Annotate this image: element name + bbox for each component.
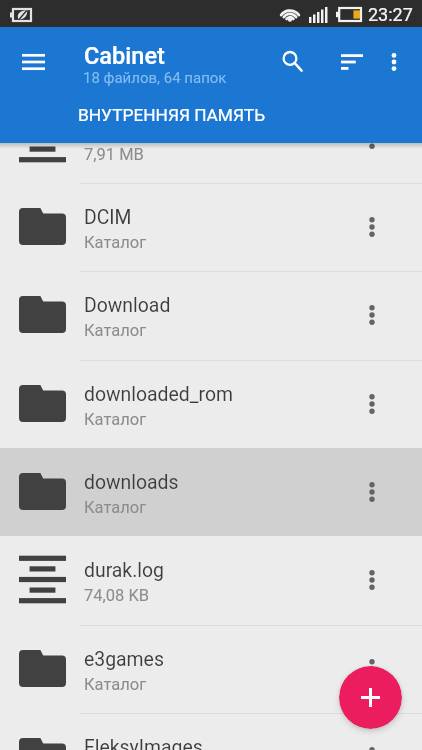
- button[interactable]: More options: [370, 38, 418, 86]
- button[interactable]: e3games: [0, 625, 422, 713]
- staticText: durak.log: [84, 559, 334, 582]
- staticText: Каталог: [84, 321, 147, 340]
- staticText: Cabinet: [84, 42, 165, 70]
- button[interactable]: Item options: [348, 713, 396, 750]
- button[interactable]: Item options: [348, 95, 396, 183]
- button[interactable]: Navigation menu: [9, 38, 57, 86]
- button[interactable]: Item options: [348, 448, 396, 536]
- staticText: Каталог: [84, 233, 147, 252]
- staticText: FleksyImages: [84, 736, 334, 750]
- staticText: 74,08 KB: [84, 586, 150, 605]
- button[interactable]: Item options: [348, 183, 396, 271]
- staticText: Каталог: [84, 675, 147, 694]
- staticText: 7,91 MB: [84, 145, 144, 164]
- button[interactable]: downloaded_rom: [0, 360, 422, 448]
- staticText: 23:27: [368, 4, 413, 25]
- button[interactable]: FleksyImages: [0, 713, 422, 750]
- staticText: e3games: [84, 648, 334, 671]
- button[interactable]: DCIM: [0, 183, 422, 271]
- button[interactable]: Add: [339, 666, 402, 729]
- staticText: Каталог: [84, 498, 147, 517]
- button[interactable]: Item options: [348, 625, 396, 713]
- staticText: Каталог: [84, 410, 147, 429]
- button[interactable]: Item options: [348, 360, 396, 448]
- button[interactable]: durak.log: [0, 536, 422, 624]
- staticText: Download: [84, 294, 334, 317]
- button[interactable]: ВНУТРЕННЯЯ ПАМЯТЬ: [78, 105, 266, 125]
- staticText: downloads: [84, 471, 334, 494]
- staticText: rom.zip: [84, 118, 334, 141]
- button[interactable]: Search: [268, 37, 316, 85]
- staticText: downloaded_rom: [84, 383, 334, 406]
- staticText: DCIM: [84, 206, 334, 229]
- button[interactable]: Item options: [348, 271, 396, 359]
- staticText: 18 файлов, 64 папок: [83, 69, 227, 87]
- button[interactable]: downloads: [0, 448, 422, 536]
- button[interactable]: Download: [0, 271, 422, 359]
- button[interactable]: rom.zip: [0, 95, 422, 183]
- button[interactable]: Item options: [348, 536, 396, 624]
- button[interactable]: Sort: [328, 38, 376, 86]
